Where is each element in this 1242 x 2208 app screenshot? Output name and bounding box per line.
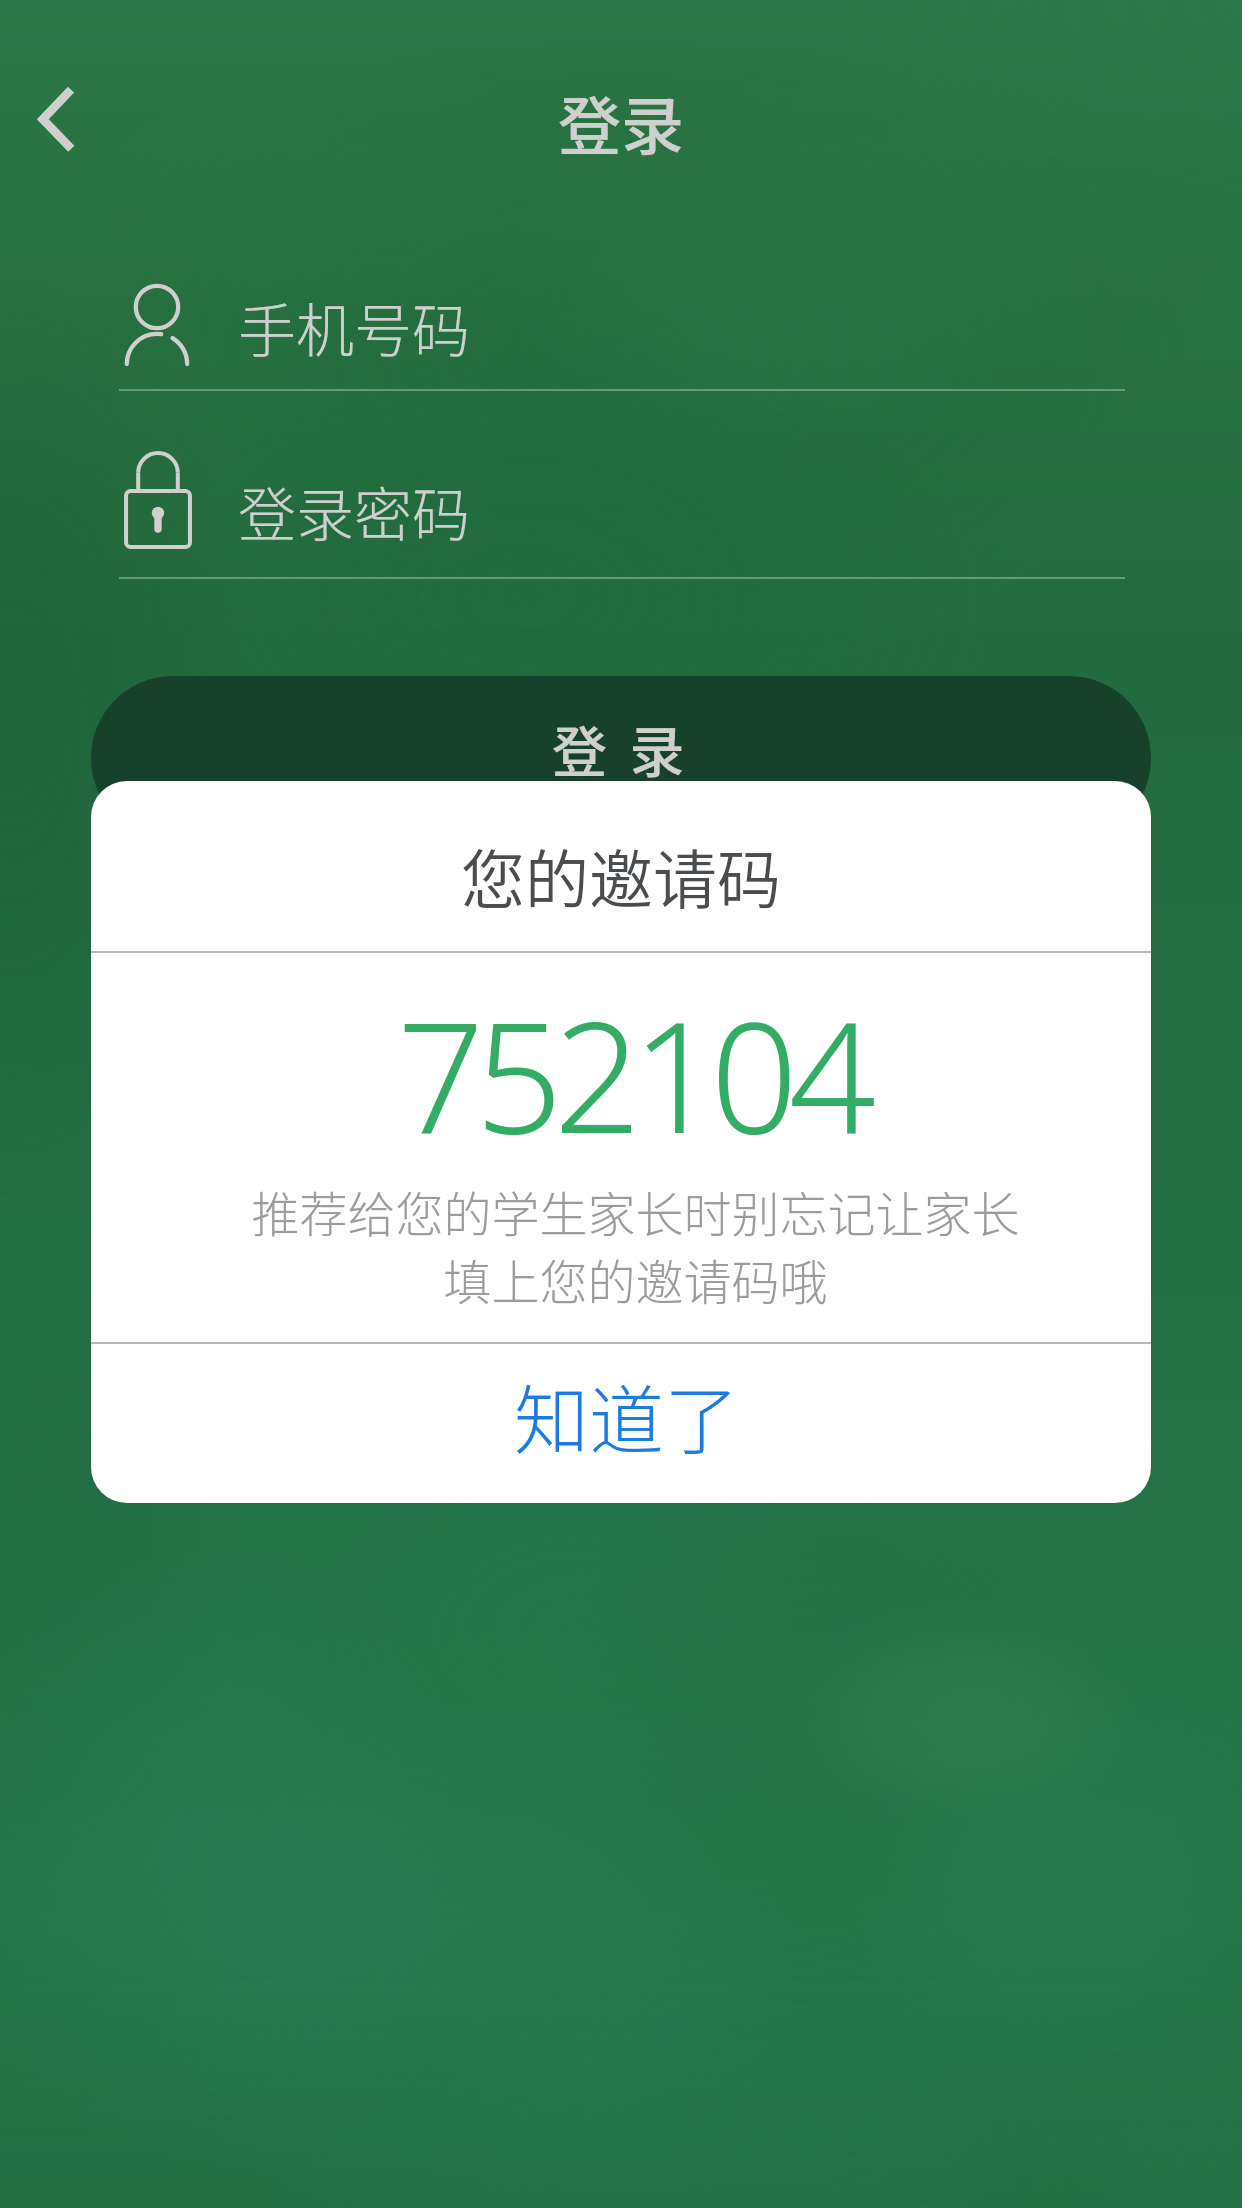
staticText: 手机号码: [238, 285, 471, 369]
staticText: 登 录: [552, 708, 690, 788]
button[interactable]: 知道了: [91, 1344, 1151, 1503]
staticText: 登录密码: [238, 469, 471, 553]
button[interactable]: 手机号码: [119, 265, 1125, 389]
staticText: 您的邀请码: [461, 829, 781, 922]
staticText: 推荐给您的学生家长时别忘记让家长 填上您的邀请码哦: [251, 1176, 1020, 1314]
staticText: 知道了: [514, 1361, 740, 1470]
button[interactable]: 登 录: [91, 676, 1151, 840]
staticText: 登录: [558, 76, 684, 167]
button[interactable]: 登录密码: [119, 449, 1125, 577]
button[interactable]: Back: [4, 64, 112, 174]
staticText: 752104: [397, 969, 868, 1177]
